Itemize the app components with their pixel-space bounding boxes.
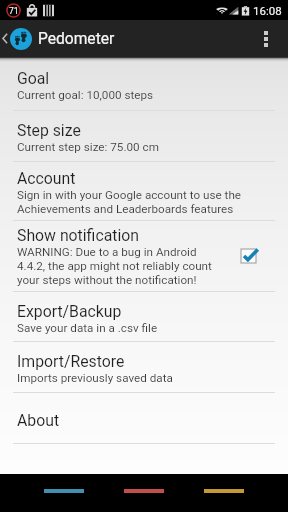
staticText: Save your data in a .csv file	[17, 321, 158, 335]
button[interactable]: Account	[0, 162, 288, 220]
staticText: 71	[9, 6, 19, 16]
button[interactable]: Show notification	[0, 221, 288, 291]
staticText: Import/Restore	[17, 352, 125, 371]
staticText: Pedometer	[38, 30, 115, 48]
staticText: Account	[17, 169, 76, 188]
staticText: Goal	[17, 69, 50, 88]
button[interactable]: Step size	[0, 111, 288, 161]
staticText: Current goal: 10,000 steps	[17, 88, 154, 102]
staticText: Sign in with your Google account to use …	[17, 188, 242, 216]
staticText: 16:08	[253, 4, 282, 17]
staticText: Imports previously saved data	[17, 371, 173, 385]
button[interactable]: Home	[104, 474, 184, 512]
button[interactable]: Navigate up	[0, 20, 32, 57]
staticText: About	[17, 411, 60, 430]
staticText: Current step size: 75.00 cm	[17, 140, 159, 154]
button[interactable]: Back	[24, 474, 104, 512]
button[interactable]: Goal	[0, 63, 288, 110]
staticText: Export/Backup	[17, 302, 122, 321]
button[interactable]: Recents	[184, 474, 264, 512]
staticText: WARNING: Due to a bug in Android 4.4.2, …	[17, 245, 212, 287]
button[interactable]: Import/Restore	[0, 342, 288, 392]
staticText: Step size	[17, 121, 81, 140]
staticText: Show notification	[17, 226, 139, 245]
button[interactable]: Export/Backup	[0, 292, 288, 341]
button[interactable]: More options	[244, 20, 288, 57]
button[interactable]: About	[0, 393, 288, 443]
